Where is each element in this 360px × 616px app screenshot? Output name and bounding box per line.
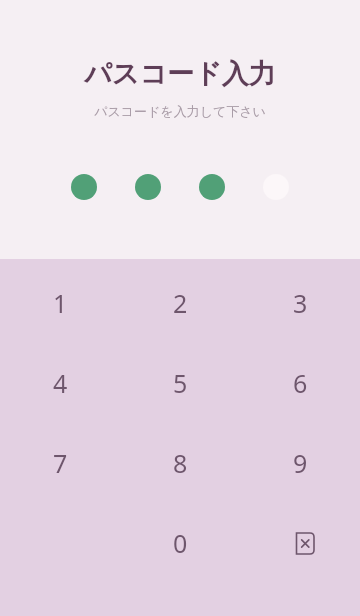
staticText: 3	[293, 286, 308, 320]
button[interactable]: Backspace	[240, 503, 360, 583]
staticText: 5	[173, 366, 188, 400]
staticText: 2	[173, 286, 188, 320]
staticText: パスコードを入力して下さい	[94, 103, 266, 119]
staticText: 7	[53, 446, 68, 480]
staticText: パスコード入力	[84, 57, 276, 91]
staticText: 6	[293, 366, 308, 400]
button[interactable]: 1	[0, 263, 120, 343]
button[interactable]: 3	[240, 263, 360, 343]
button[interactable]: 5	[120, 343, 240, 423]
staticText: 9	[293, 446, 308, 480]
staticText: 8	[173, 446, 188, 480]
button[interactable]: 9	[240, 423, 360, 503]
button[interactable]: 2	[120, 263, 240, 343]
button[interactable]: 4	[0, 343, 120, 423]
staticText: 0	[173, 526, 188, 560]
button[interactable]: 0	[120, 503, 240, 583]
staticText: 1	[53, 286, 68, 320]
button[interactable]: 8	[120, 423, 240, 503]
button[interactable]: 6	[240, 343, 360, 423]
button[interactable]: 7	[0, 423, 120, 503]
staticText: 4	[53, 366, 68, 400]
